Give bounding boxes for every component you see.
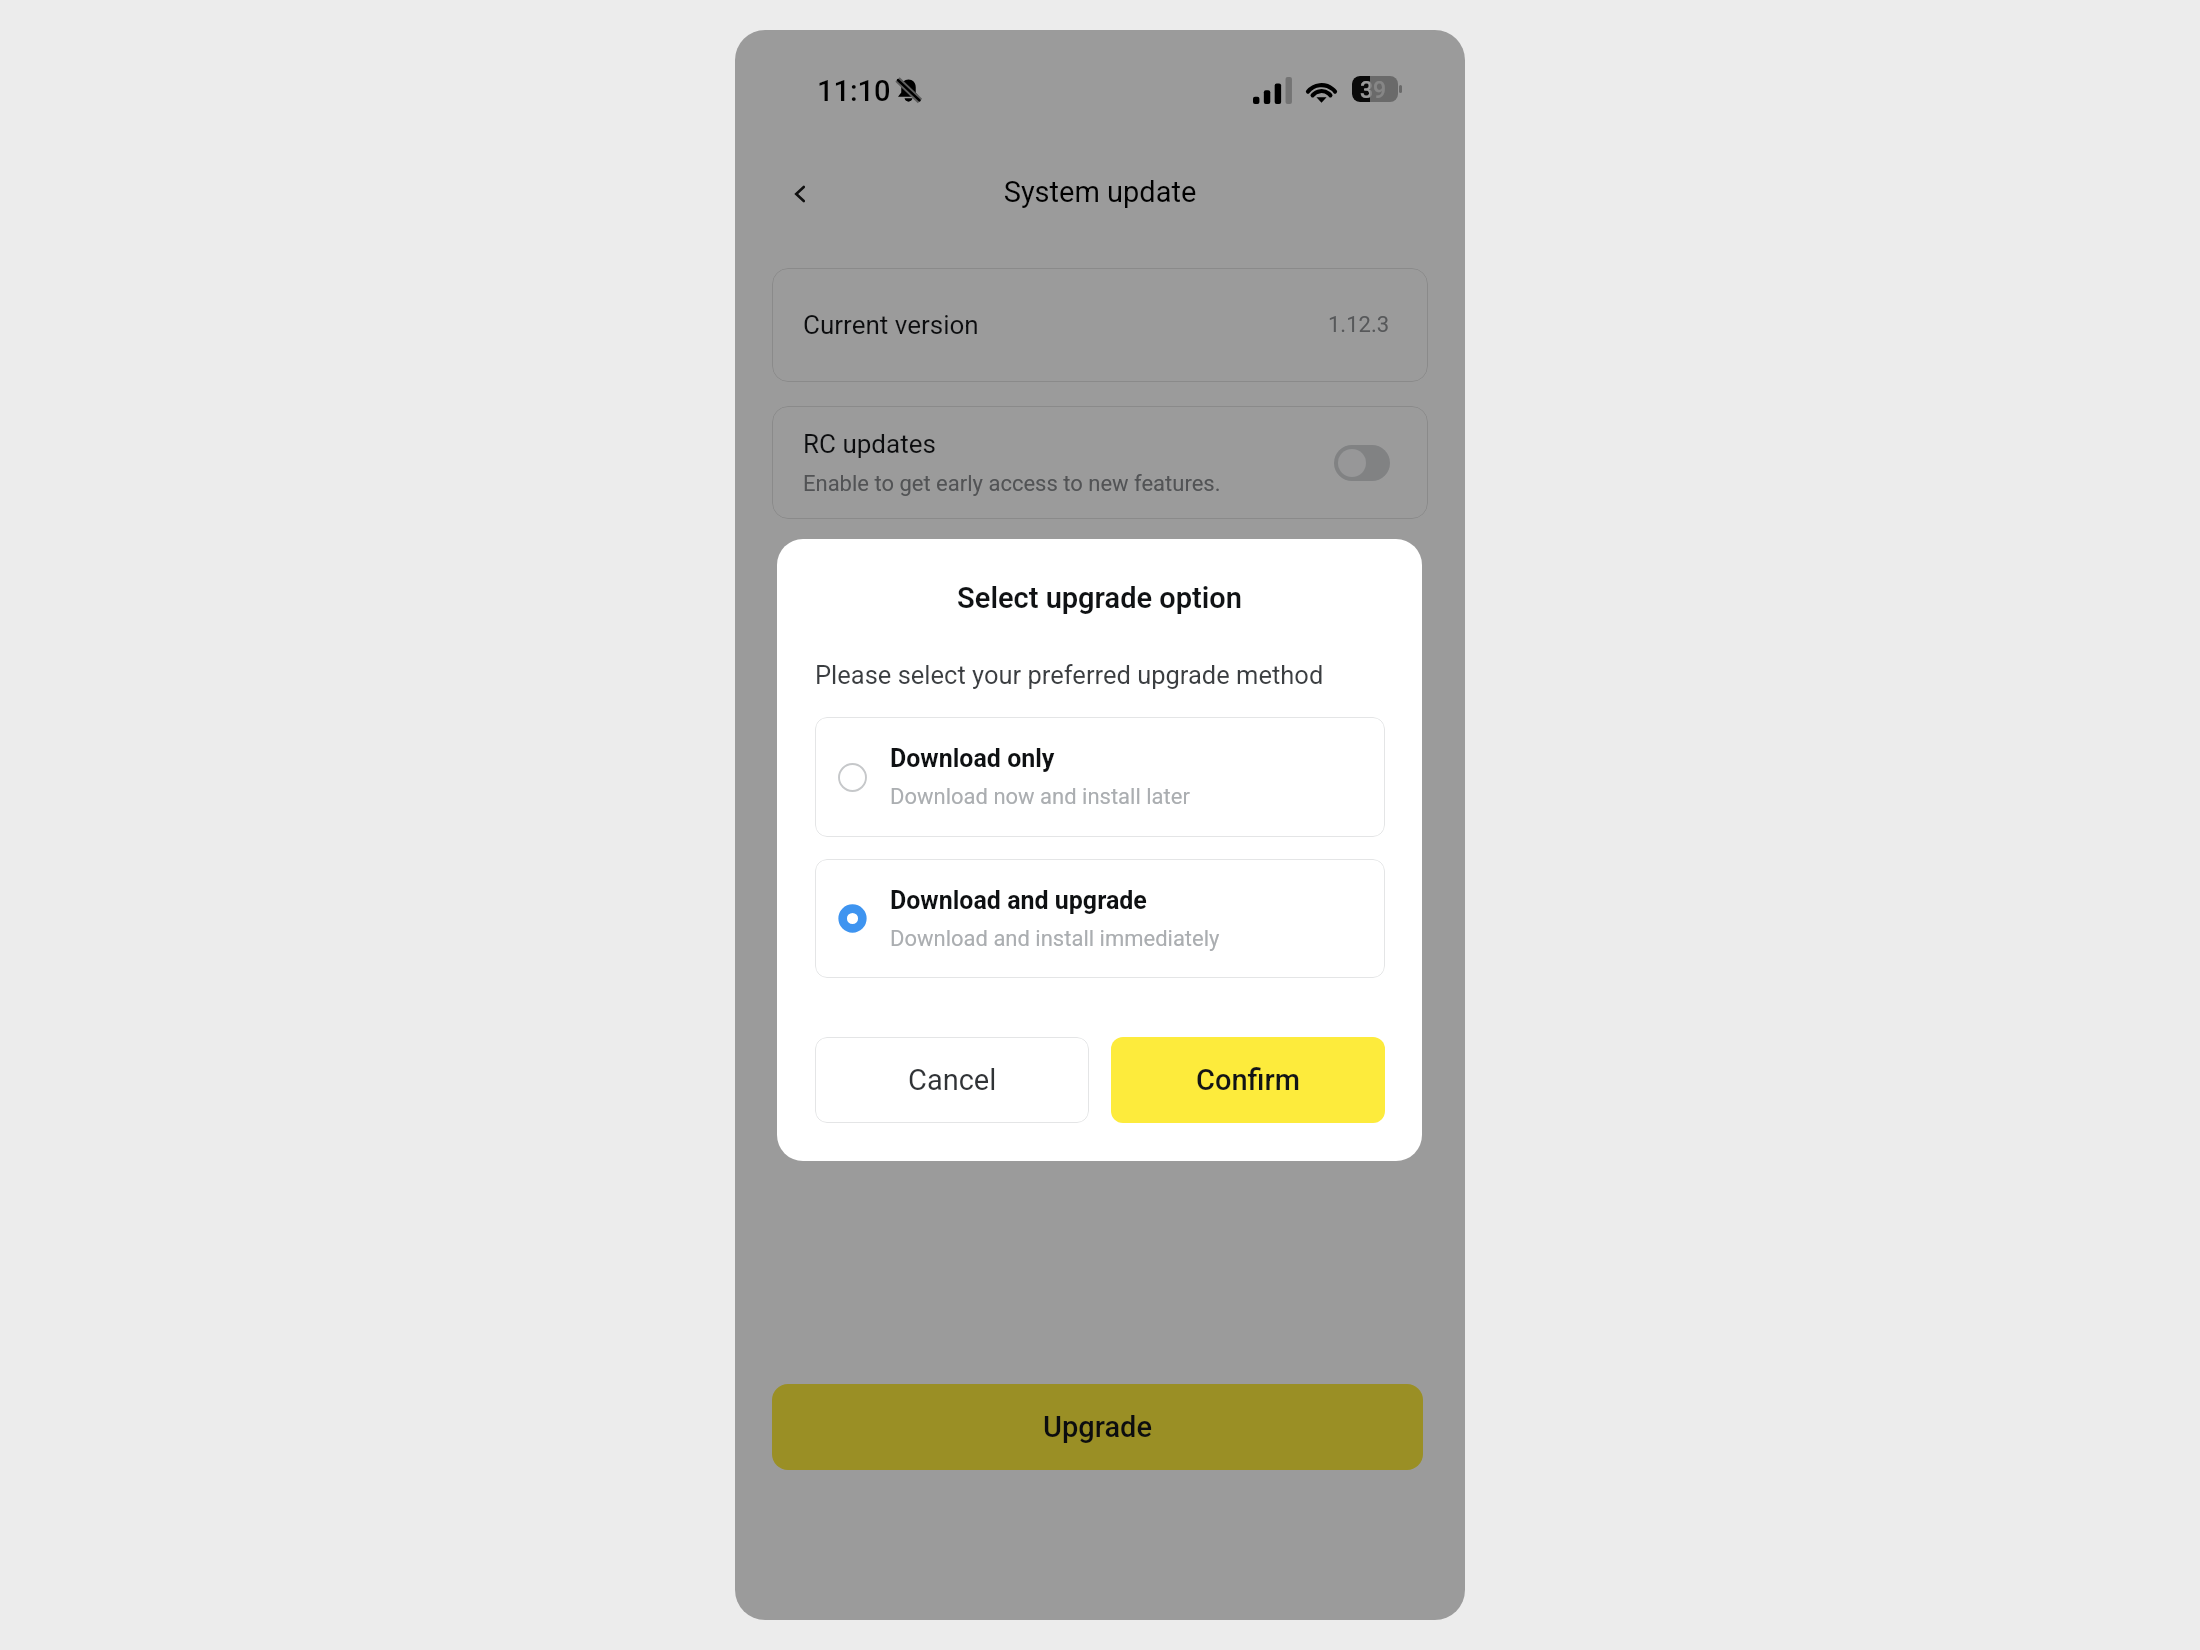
button[interactable]: Confirm xyxy=(1111,1037,1385,1123)
staticText: 1.12.3 xyxy=(1328,312,1390,338)
staticText: RC updates xyxy=(803,429,936,459)
staticText: 39 xyxy=(1360,77,1370,102)
staticText: Cancel xyxy=(908,1063,997,1097)
staticText: 39 xyxy=(1370,77,1387,102)
staticText: Confirm xyxy=(1196,1063,1300,1097)
staticText: Download only xyxy=(890,744,1055,773)
staticText: Enable to get early access to new featur… xyxy=(803,471,1221,497)
staticText: Upgrade xyxy=(1043,1410,1152,1444)
button[interactable]: Download and upgrade xyxy=(815,859,1385,978)
staticText: System update xyxy=(735,175,1465,209)
button[interactable]: Cancel xyxy=(815,1037,1089,1123)
button[interactable]: Back xyxy=(772,166,828,222)
staticText: Please select your preferred upgrade met… xyxy=(815,660,1324,690)
staticText: Download and install immediately xyxy=(890,926,1220,952)
staticText: Download and upgrade xyxy=(890,886,1147,915)
staticText: Current version xyxy=(803,310,979,340)
staticText: Select upgrade option xyxy=(777,581,1422,615)
button[interactable]: Current version xyxy=(772,268,1428,382)
button[interactable]: RC updates xyxy=(772,406,1428,519)
staticText: Download now and install later xyxy=(890,784,1190,810)
button[interactable]: Upgrade xyxy=(772,1384,1423,1470)
button[interactable]: Download only xyxy=(815,717,1385,837)
staticText: 11:10 xyxy=(817,74,891,108)
button[interactable]: Toggle RC updates xyxy=(1334,445,1390,481)
